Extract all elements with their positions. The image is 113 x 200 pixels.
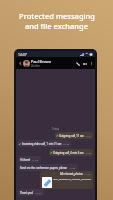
button[interactable]: Video call	[81, 60, 88, 67]
staticText: 13:50	[85, 151, 92, 154]
button[interactable]: All relevant_photos	[40, 171, 93, 189]
staticText: 13:41	[85, 134, 92, 137]
staticText: Incoming video call, 1 min 11 sec	[22, 142, 62, 145]
button[interactable]: More options	[88, 60, 94, 66]
staticText: 13:44	[63, 142, 70, 145]
staticText: Today	[52, 127, 60, 130]
button[interactable]: Outgoing call, 11 sec	[55, 132, 93, 139]
staticText: and file exchange	[25, 21, 88, 31]
button[interactable]: Outgoing call, 4 min 8 sec	[49, 149, 93, 156]
staticText: 14:07	[18, 52, 27, 57]
button[interactable]: Incoming video call, 1 min 11 sec	[18, 140, 71, 147]
staticText: 13:56	[69, 166, 76, 169]
button[interactable]: Send me the conference papers, please	[18, 164, 78, 171]
staticText: Outgoing call, 4 min 8 sec	[53, 151, 84, 154]
staticText: Protected messaging	[19, 11, 95, 21]
staticText: Hi there!	[20, 158, 31, 161]
button[interactable]: Back	[17, 60, 23, 66]
staticText: 14:06	[35, 191, 42, 194]
staticText: Outgoing call, 11 sec	[59, 134, 84, 137]
staticText: Send me the conference papers, please	[20, 166, 68, 169]
staticText: 13:55	[32, 158, 39, 161]
button[interactable]: Thank you!	[18, 189, 44, 196]
staticText: 14:02	[84, 172, 91, 175]
staticText: IMG_20230614_140332_844.png	[53, 177, 91, 180]
staticText: Online	[31, 64, 40, 68]
button[interactable]: Hi there!	[18, 156, 41, 163]
staticText: Thank you!	[20, 191, 34, 194]
staticText: All relevant_photos	[60, 172, 83, 175]
button[interactable]: Call	[74, 60, 81, 67]
staticText: Paul Brown	[31, 59, 51, 64]
